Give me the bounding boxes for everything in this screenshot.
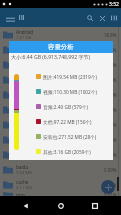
staticText: Music (16, 89, 29, 95)
staticText: 视频:110.30 MB (1002个) (43, 89, 97, 95)
staticText: tencent (16, 134, 33, 140)
button[interactable]: 视频:110.30 MB (1002个) (36, 84, 121, 99)
staticText: baidu (16, 164, 29, 170)
staticText: sina (16, 149, 25, 155)
staticText: 14.9% (104, 47, 117, 53)
button[interactable]: More options (108, 12, 120, 24)
button[interactable]: 图片:419.54 MB (2319个) (36, 69, 121, 84)
staticText: 18.8% (104, 32, 117, 38)
staticText: 2.11 MB (16, 185, 32, 191)
staticText: 112.0 MB (16, 80, 35, 86)
button[interactable]: Download (0, 57, 121, 72)
staticText: 0.01% (104, 192, 117, 196)
button[interactable]: 音频:2.40 GB (579个) (36, 99, 121, 114)
staticText: 容量分析 (48, 43, 74, 51)
staticText: 10.11 MB (16, 155, 35, 161)
staticText: 文档:97.22 MB (150个) (43, 119, 92, 125)
staticText: 其他:3.16 GB (2059个) (43, 149, 91, 155)
button[interactable]: Pictures (0, 102, 121, 117)
staticText: 图片:419.54 MB (2319个) (43, 74, 97, 80)
button[interactable]: Add (101, 180, 115, 194)
staticText: 984.2 MB (16, 50, 35, 56)
button[interactable]: Back (18, 198, 34, 214)
staticText: 1.21 GB (16, 35, 32, 41)
staticText: 0.44% (104, 122, 117, 128)
button[interactable]: tmp (0, 192, 121, 196)
staticText: cache (16, 179, 29, 185)
staticText: Pictures (16, 104, 34, 110)
staticText: 0.03% (104, 182, 117, 188)
staticText: 0.87% (104, 92, 117, 98)
staticText: Download (16, 59, 38, 65)
staticText: 0.09% (104, 167, 117, 173)
staticText: Android (16, 29, 34, 35)
button[interactable]: 文档:97.22 MB (150个) (36, 114, 121, 129)
staticText: 88.42 MB (16, 140, 35, 146)
staticText: 1.74% (104, 77, 117, 83)
staticText: 7.04 MB (16, 170, 32, 176)
button[interactable]: sina (0, 147, 121, 162)
staticText: 212.7 MB (16, 110, 35, 116)
button[interactable]: baidu (0, 162, 121, 177)
staticText: 6.72% (104, 62, 117, 68)
staticText: 3:52 (109, 1, 119, 8)
button[interactable]: Menu (2, 11, 18, 27)
staticText: tmp (16, 192, 25, 196)
button[interactable]: 其他:3.16 GB (2059个) (36, 144, 121, 159)
button[interactable]: Close (96, 12, 108, 24)
staticText: 3.30% (104, 107, 117, 113)
button[interactable]: Android (0, 27, 121, 42)
button[interactable]: Music (0, 87, 121, 102)
staticText: 音频:2.40 GB (579个) (43, 104, 88, 110)
staticText: 56.19 MB (16, 95, 35, 101)
staticText: 0.15% (104, 152, 117, 158)
button[interactable]: Home (53, 198, 69, 214)
staticText: 安装包:271.52 MB (28个) (43, 134, 97, 140)
button[interactable]: Recents (87, 198, 103, 214)
staticText: Movies (16, 74, 32, 80)
button[interactable]: Movies (0, 72, 121, 87)
button[interactable]: 安装包:271.52 MB (28个) (36, 129, 121, 144)
button[interactable]: backups (0, 117, 121, 132)
staticText: backups (16, 119, 34, 125)
button[interactable]: cache (0, 177, 121, 192)
button[interactable]: View mode (15, 11, 27, 23)
button[interactable]: Search (84, 12, 96, 24)
button[interactable]: DCIM (0, 42, 121, 57)
staticText: 3C.19 MB (16, 125, 35, 131)
button[interactable]: tencent (0, 132, 121, 147)
staticText: 1.37% (104, 137, 117, 143)
staticText: 大小:6.44 GB (6,913,748,992 字节) (11, 54, 91, 61)
